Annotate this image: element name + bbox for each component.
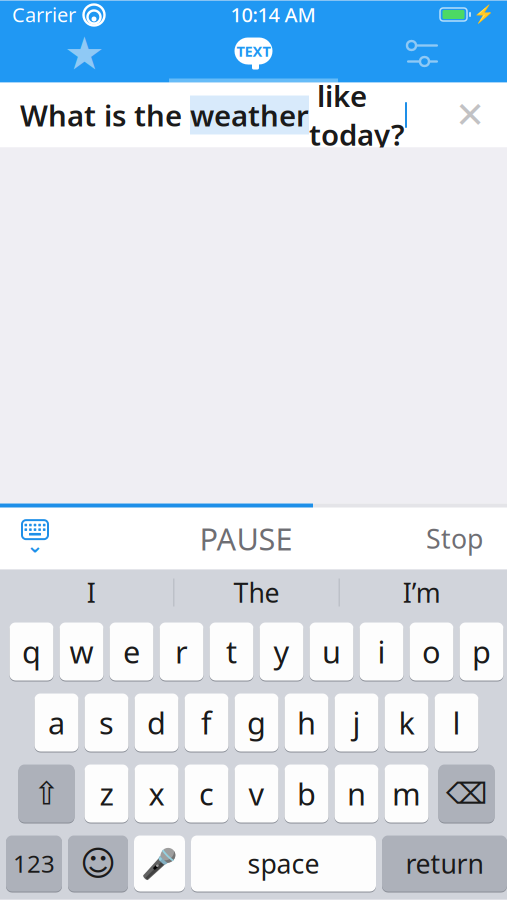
staticText: v bbox=[248, 773, 264, 814]
staticText: h bbox=[297, 702, 316, 743]
staticText: The bbox=[233, 575, 279, 610]
staticText: r bbox=[175, 631, 188, 672]
staticText: k bbox=[398, 702, 414, 743]
staticText: a bbox=[48, 702, 65, 743]
button[interactable]: m bbox=[384, 763, 428, 823]
staticText: weather bbox=[190, 95, 309, 134]
staticText: ✕ bbox=[455, 95, 485, 135]
button[interactable]: e bbox=[109, 621, 153, 681]
staticText: ⌫ bbox=[446, 777, 487, 810]
staticText: ⇧ bbox=[33, 775, 60, 812]
staticText: m bbox=[392, 773, 421, 814]
staticText: s bbox=[99, 702, 114, 743]
button[interactable]: f bbox=[184, 692, 228, 752]
button[interactable]: s bbox=[84, 692, 128, 752]
button[interactable]: 🎤 bbox=[134, 834, 185, 892]
staticText: 123 bbox=[13, 848, 55, 879]
staticText: ★ bbox=[64, 28, 105, 79]
staticText: p bbox=[472, 631, 491, 672]
staticText: 10:14 AM bbox=[230, 1, 315, 28]
staticText: i bbox=[377, 631, 385, 672]
button[interactable]: q bbox=[9, 621, 53, 681]
button[interactable]: w bbox=[59, 621, 103, 681]
staticText: d bbox=[147, 702, 166, 743]
staticText: e bbox=[123, 631, 140, 672]
button[interactable]: ☺ bbox=[68, 834, 128, 892]
staticText: c bbox=[199, 773, 214, 814]
button[interactable]: space bbox=[191, 834, 376, 892]
staticText: Stop bbox=[426, 521, 483, 556]
button[interactable]: Favorites bbox=[0, 28, 169, 78]
button[interactable]: a bbox=[34, 692, 78, 752]
staticText: u bbox=[322, 631, 341, 672]
button[interactable]: Clear text bbox=[447, 92, 493, 138]
staticText: x bbox=[148, 773, 164, 814]
button[interactable]: p bbox=[459, 621, 503, 681]
staticText: z bbox=[99, 773, 113, 814]
staticText: space bbox=[247, 846, 319, 881]
button[interactable]: return bbox=[382, 834, 507, 892]
button[interactable]: Hide keyboard bbox=[4, 507, 66, 569]
button[interactable]: c bbox=[184, 763, 228, 823]
button[interactable]: b bbox=[284, 763, 328, 823]
button[interactable]: i bbox=[359, 621, 403, 681]
button[interactable]: I’m bbox=[340, 569, 504, 615]
button[interactable]: ⇧ bbox=[18, 763, 74, 823]
button[interactable]: Stop bbox=[426, 507, 507, 569]
staticText: I’m bbox=[403, 575, 441, 610]
staticText: f bbox=[201, 702, 212, 743]
button[interactable]: The bbox=[174, 569, 339, 615]
button[interactable]: t bbox=[209, 621, 253, 681]
button[interactable]: PAUSE bbox=[199, 507, 292, 569]
button[interactable]: o bbox=[409, 621, 453, 681]
staticText: ⌄ bbox=[26, 534, 43, 557]
staticText: return bbox=[405, 846, 483, 881]
button[interactable]: x bbox=[134, 763, 178, 823]
button[interactable]: h bbox=[284, 692, 328, 752]
staticText: ☺ bbox=[80, 844, 116, 883]
staticText: ⚡ bbox=[473, 5, 495, 24]
button[interactable]: n bbox=[334, 763, 378, 823]
button[interactable]: j bbox=[334, 692, 378, 752]
button[interactable]: l bbox=[434, 692, 478, 752]
button[interactable]: v bbox=[234, 763, 278, 823]
button[interactable]: d bbox=[134, 692, 178, 752]
staticText: l bbox=[452, 702, 460, 743]
staticText: b bbox=[297, 773, 316, 814]
button[interactable]: ⌫ bbox=[438, 763, 494, 823]
button[interactable]: g bbox=[234, 692, 278, 752]
staticText: n bbox=[347, 773, 366, 814]
staticText: q bbox=[22, 631, 41, 672]
staticText: What is the bbox=[20, 95, 190, 134]
button[interactable]: I bbox=[9, 569, 173, 615]
button[interactable]: 123 bbox=[6, 834, 62, 892]
staticText: PAUSE bbox=[199, 518, 292, 559]
staticText: TEXT bbox=[236, 41, 270, 61]
button[interactable]: u bbox=[309, 621, 353, 681]
button[interactable]: y bbox=[259, 621, 303, 681]
button[interactable]: k bbox=[384, 692, 428, 752]
button[interactable]: Settings bbox=[338, 28, 507, 78]
staticText: Carrier bbox=[12, 1, 76, 28]
staticText: I bbox=[87, 575, 96, 610]
staticText: j bbox=[352, 702, 360, 743]
button[interactable]: Text bbox=[169, 28, 338, 78]
staticText: w bbox=[69, 631, 93, 672]
button[interactable]: z bbox=[84, 763, 128, 823]
staticText: o bbox=[422, 631, 441, 672]
staticText: 🎤 bbox=[141, 847, 178, 880]
staticText: t bbox=[226, 631, 237, 672]
staticText: g bbox=[247, 702, 266, 743]
staticText: y bbox=[273, 631, 289, 672]
button[interactable]: r bbox=[159, 621, 203, 681]
staticText: like today? bbox=[309, 76, 405, 154]
